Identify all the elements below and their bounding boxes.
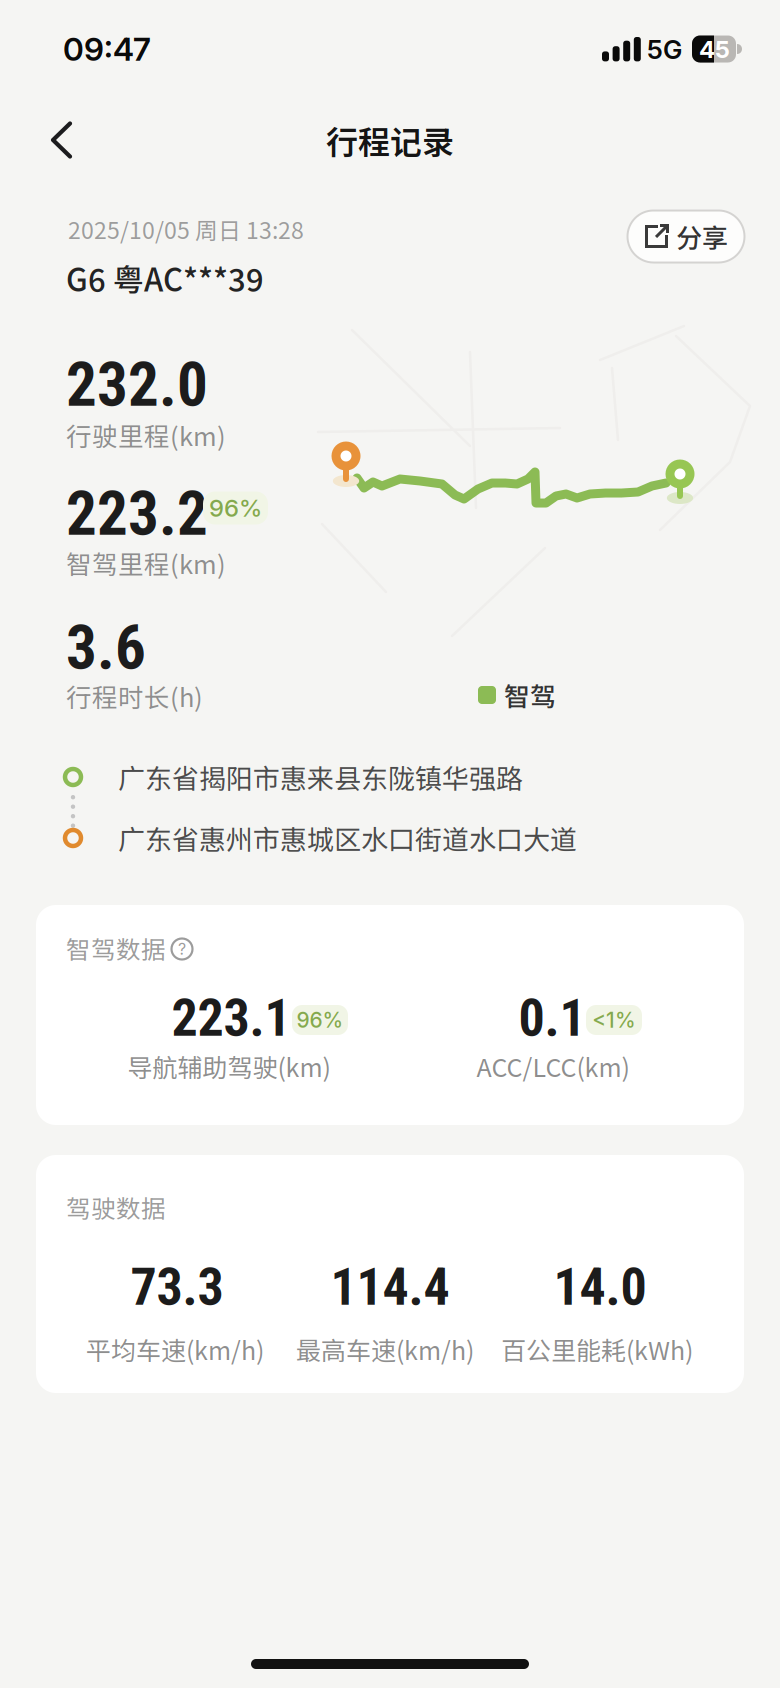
staticText: 最高车速(km/h) [296,1331,474,1367]
staticText: 14.0 [553,1256,646,1317]
staticText: 0.1 [518,987,585,1048]
staticText: 行驶里程(km) [66,416,226,453]
staticText: 分享 [676,218,728,255]
staticText: 2025/10/05 周日 13:28 [68,212,304,246]
staticText: 行程时长(h) [66,677,203,714]
staticText: 智驾数据 [66,930,166,966]
staticText: 百公里能耗(kWh) [501,1331,693,1367]
staticText: 96% [209,493,262,522]
staticText: 09:47 [63,30,151,68]
staticText: 223.1 [171,987,290,1048]
staticText: 3.6 [66,612,146,684]
staticText: 广东省惠州市惠城区水口街道水口大道 [118,818,577,858]
staticText: 智驾 [504,676,556,714]
staticText: G6 粤AC***39 [66,256,264,300]
staticText: 广东省揭阳市惠来县东陇镇华强路 [118,757,523,797]
staticText: ACC/LCC(km) [476,1048,629,1084]
staticText: 导航辅助驾驶(km) [127,1048,330,1084]
staticText: 智驾里程(km) [66,544,226,581]
staticText: 232.0 [66,349,208,421]
staticText: 5G [647,34,682,65]
button[interactable]: 分享 [627,210,744,262]
staticText: <1% [592,1007,636,1033]
staticText: 114.4 [330,1256,449,1317]
staticText: 平均车速(km/h) [86,1331,264,1367]
staticText: 223.2 [66,478,208,550]
staticText: ? [178,939,186,959]
button[interactable]: Back [44,117,88,162]
staticText: 45 [699,35,730,64]
staticText: 73.3 [130,1256,223,1317]
staticText: 行程记录 [326,117,454,163]
staticText: 96% [296,1007,343,1033]
staticText: 驾驶数据 [66,1189,166,1225]
button[interactable]: Help [170,937,193,960]
